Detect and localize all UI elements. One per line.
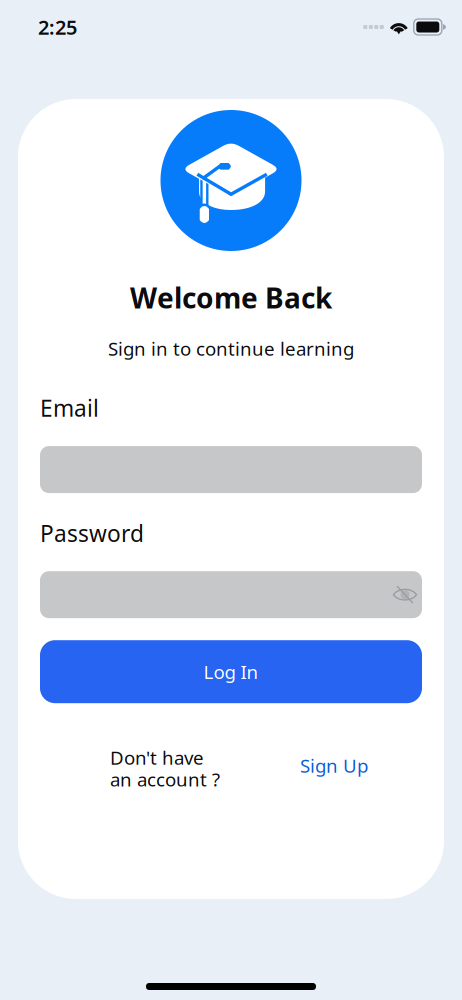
button[interactable]: Sign Up bbox=[300, 753, 368, 778]
staticText: an account ? bbox=[110, 767, 220, 792]
staticText: Log In bbox=[203, 659, 258, 684]
staticText: 2:25 bbox=[38, 14, 77, 40]
staticText: Welcome Back bbox=[130, 279, 332, 316]
button[interactable]: Log In bbox=[40, 640, 422, 703]
staticText: Email bbox=[40, 393, 99, 423]
staticText: Sign Up bbox=[300, 753, 368, 778]
staticText: Password bbox=[40, 518, 144, 548]
button[interactable]: Show password bbox=[389, 579, 421, 611]
staticText: Don't have bbox=[110, 745, 204, 770]
staticText: Sign in to continue learning bbox=[108, 336, 354, 361]
